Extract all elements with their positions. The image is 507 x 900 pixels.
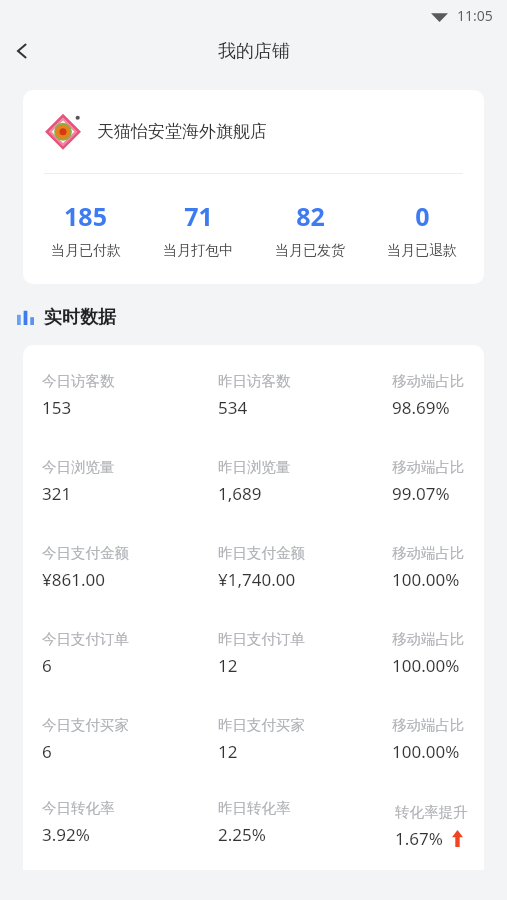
staticText: 100.00% [392,654,460,677]
staticText: 今日转化率 [42,799,115,817]
staticText: 99.07% [392,482,450,505]
button[interactable]: 移动端占比 [392,630,484,677]
staticText: 昨日支付金额 [218,544,305,562]
staticText: 昨日支付订单 [218,630,305,648]
button[interactable]: 转化率提升 [395,799,484,850]
staticText: 昨日转化率 [218,799,291,817]
staticText: 今日支付金额 [42,544,129,562]
staticText: 6 [42,654,52,677]
staticText: ¥1,740.00 [218,568,296,591]
staticText: 昨日访客数 [218,372,291,390]
button[interactable]: 昨日支付订单 [218,630,392,677]
staticText: 当月已付款 [51,242,121,260]
staticText: 实时数据 [44,306,116,329]
button[interactable]: 移动端占比 [392,544,484,591]
staticText: 1,689 [218,482,262,505]
staticText: 移动端占比 [392,544,465,562]
staticText: 321 [42,482,72,505]
staticText: 153 [42,396,72,419]
staticText: 100.00% [392,740,460,763]
button[interactable]: 今日支付金额 [42,544,218,591]
staticText: 11:05 [457,6,493,25]
button[interactable]: 昨日支付金额 [218,544,392,591]
button[interactable]: 0 [366,199,478,260]
button[interactable]: 昨日访客数 [218,372,392,419]
button[interactable]: 今日支付订单 [42,630,218,677]
staticText: 当月打包中 [163,242,233,260]
button[interactable]: 71 [142,199,254,260]
button[interactable]: 移动端占比 [392,716,484,763]
staticText: 今日支付订单 [42,630,129,648]
button[interactable]: 昨日支付买家 [218,716,392,763]
button[interactable]: 今日浏览量 [42,458,218,505]
button[interactable]: 今日支付买家 [42,716,218,763]
button[interactable]: 天猫怡安堂海外旗舰店 [23,90,484,284]
staticText: 今日访客数 [42,372,115,390]
button[interactable]: 移动端占比 [392,372,484,419]
staticText: 534 [218,396,248,419]
staticText: 移动端占比 [392,630,465,648]
staticText: 0 [415,199,430,233]
button[interactable]: 82 [254,199,366,260]
staticText: 移动端占比 [392,372,465,390]
button[interactable]: Back [0,30,44,72]
staticText: 98.69% [392,396,450,419]
staticText: 转化率提升 [395,803,468,821]
staticText: 100.00% [392,568,460,591]
staticText: 3.92% [42,823,90,846]
staticText: 1.67% [395,827,443,850]
staticText: 82 [296,199,325,233]
staticText: 我的店铺 [218,40,290,63]
button[interactable]: 昨日转化率 [218,799,392,846]
staticText: 当月已发货 [275,242,345,260]
staticText: 12 [218,740,238,763]
button[interactable]: 移动端占比 [392,458,484,505]
staticText: 移动端占比 [392,716,465,734]
staticText: 185 [64,199,107,233]
staticText: 12 [218,654,238,677]
staticText: 移动端占比 [392,458,465,476]
staticText: 2.25% [218,823,266,846]
staticText: 今日浏览量 [42,458,115,476]
staticText: 6 [42,740,52,763]
staticText: 天猫怡安堂海外旗舰店 [97,121,267,142]
staticText: 71 [184,199,213,233]
staticText: 昨日浏览量 [218,458,291,476]
staticText: ¥861.00 [42,568,105,591]
staticText: 昨日支付买家 [218,716,305,734]
button[interactable]: 今日访客数 [42,372,218,419]
button[interactable]: 今日转化率 [42,799,218,846]
staticText: 当月已退款 [387,242,457,260]
button[interactable]: 昨日浏览量 [218,458,392,505]
staticText: 今日支付买家 [42,716,129,734]
button[interactable]: 185 [29,199,142,260]
